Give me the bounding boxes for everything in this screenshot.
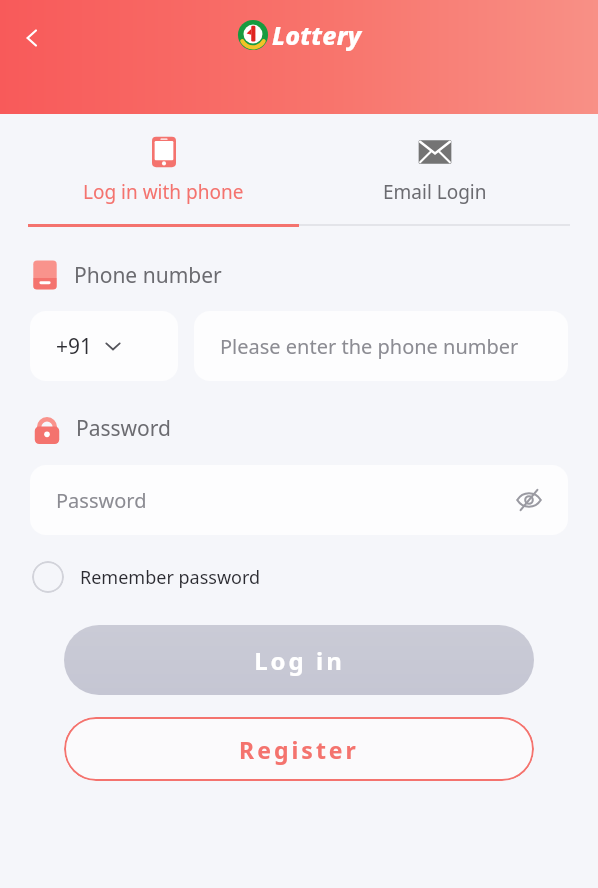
button[interactable]: +91 <box>30 311 178 381</box>
staticText: Phone number <box>74 261 222 290</box>
staticText: Log in with phone <box>83 179 244 205</box>
button[interactable]: Show password <box>512 483 546 517</box>
button[interactable]: Password <box>30 465 568 535</box>
button[interactable]: Back <box>8 14 56 62</box>
staticText: Email Login <box>383 179 487 205</box>
staticText: Remember password <box>80 565 261 590</box>
button[interactable]: Log in <box>64 625 534 695</box>
button[interactable]: Register <box>64 717 534 781</box>
button[interactable]: Log in with phone <box>28 114 299 224</box>
button[interactable]: Remember password <box>30 557 263 597</box>
button[interactable]: Please enter the phone number <box>194 311 568 381</box>
button[interactable]: Email Login <box>299 114 570 224</box>
staticText: +91 <box>56 332 93 361</box>
staticText: Password <box>76 414 171 443</box>
staticText: Register <box>239 734 359 765</box>
staticText: Log in <box>254 644 345 677</box>
staticText: Please enter the phone number <box>220 333 519 360</box>
staticText: Password <box>56 487 512 514</box>
staticText: Lottery <box>272 18 362 52</box>
